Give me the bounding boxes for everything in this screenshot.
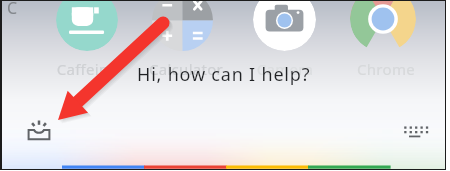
staticText: Chrome <box>326 59 445 77</box>
button[interactable] <box>56 1 118 51</box>
staticText: Caffeine <box>27 59 147 77</box>
staticText: Hi, how can I help? <box>137 62 311 87</box>
staticText: Calculator <box>126 59 246 77</box>
button[interactable]: Explore <box>22 113 55 146</box>
button[interactable] <box>152 1 213 51</box>
button[interactable] <box>350 1 416 52</box>
button[interactable] <box>253 1 316 51</box>
button[interactable]: Keyboard <box>398 114 432 148</box>
staticText: Camera <box>225 59 345 77</box>
staticText: C <box>7 1 18 19</box>
